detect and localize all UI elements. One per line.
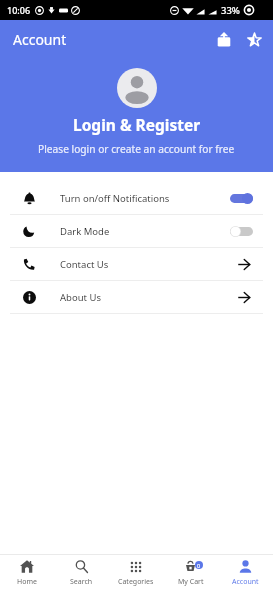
staticText: 0 <box>197 562 201 569</box>
staticText: Search <box>70 577 93 587</box>
button[interactable]: Open <box>238 259 250 270</box>
staticText: 33% <box>221 4 240 17</box>
button[interactable]: Toggle off <box>230 226 253 237</box>
staticText: Please login or create an account for fr… <box>38 142 235 156</box>
staticText: My Cart <box>178 577 204 587</box>
button[interactable]: About Us <box>0 281 273 313</box>
button[interactable]: Dark Mode <box>0 215 273 247</box>
staticText: Home <box>17 577 37 587</box>
staticText: About Us <box>60 291 101 304</box>
button[interactable]: Rate app <box>241 26 267 52</box>
staticText: Account <box>13 30 67 49</box>
button[interactable]: Home <box>0 555 54 592</box>
staticText: Turn on/off Notifications <box>60 192 170 205</box>
staticText: Dark Mode <box>60 225 110 238</box>
button[interactable]: Toggle on <box>230 193 253 204</box>
button[interactable]: Contact Us <box>0 248 273 280</box>
button[interactable]: Search <box>54 555 108 592</box>
staticText: Account <box>232 577 259 587</box>
button[interactable]: Open <box>238 292 250 303</box>
staticText: Categories <box>118 577 154 587</box>
button[interactable]: Turn on/off Notifications <box>0 182 273 214</box>
button[interactable]: Categories <box>108 555 163 592</box>
button[interactable]: Profile picture <box>117 68 157 108</box>
staticText: 10:06 <box>7 4 31 16</box>
button[interactable]: Account <box>218 555 273 592</box>
staticText: Login & Register <box>73 114 201 135</box>
button[interactable]: Share <box>211 26 237 52</box>
button[interactable]: 0 <box>163 555 218 592</box>
staticText: Contact Us <box>60 258 109 271</box>
